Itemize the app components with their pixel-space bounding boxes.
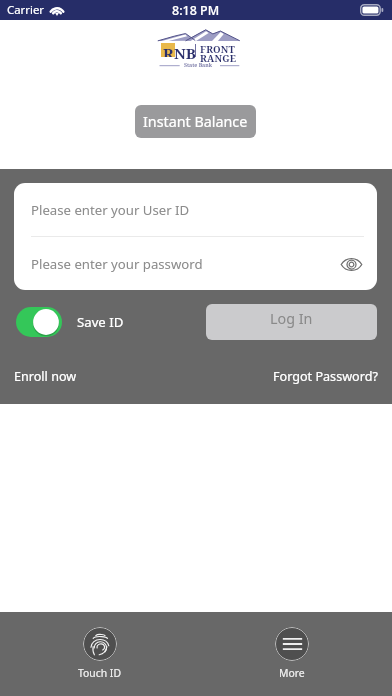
button[interactable]: Forgot Password? — [273, 365, 378, 388]
button[interactable]: Enroll now — [14, 365, 77, 388]
staticText: Carrier — [7, 2, 45, 18]
staticText: RANGE — [200, 52, 237, 65]
staticText: R — [163, 43, 174, 57]
staticText: Instant Balance — [143, 112, 248, 131]
staticText: Touch ID — [78, 666, 121, 680]
staticText: Log In — [270, 309, 313, 328]
button[interactable]: Touch ID — [68, 623, 131, 684]
staticText: FRONT — [200, 43, 235, 56]
button[interactable]: Save ID — [16, 307, 124, 337]
button[interactable]: Show password — [337, 250, 365, 278]
staticText: Save ID — [77, 313, 124, 331]
button[interactable]: Please enter your User ID — [14, 183, 377, 236]
staticText: NB — [174, 43, 196, 63]
button[interactable]: Instant Balance — [135, 105, 256, 138]
button[interactable]: Log In — [206, 304, 377, 340]
staticText: Enroll now — [14, 368, 77, 385]
staticText: State Bank — [184, 61, 212, 68]
button[interactable]: Please enter your password — [14, 237, 377, 290]
button[interactable]: More — [265, 623, 319, 684]
staticText: 8:18 PM — [172, 2, 220, 19]
staticText: Forgot Password? — [273, 368, 378, 385]
staticText: Please enter your password — [31, 255, 203, 273]
staticText: More — [279, 666, 305, 680]
staticText: Please enter your User ID — [31, 201, 190, 219]
